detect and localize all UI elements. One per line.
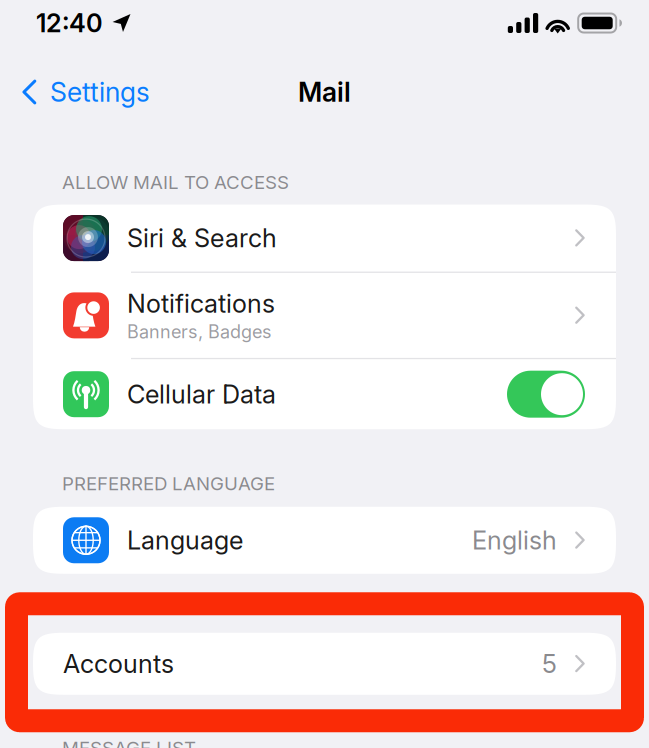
button[interactable]: Notifications: [33, 273, 616, 358]
staticText: Mail: [298, 76, 351, 108]
staticText: Notifications: [127, 288, 275, 319]
staticText: Banners, Badges: [127, 321, 272, 343]
staticText: Settings: [50, 76, 150, 108]
staticText: 12:40: [36, 8, 103, 38]
button[interactable]: Cellular Data: [33, 359, 616, 429]
staticText: MESSAGE LIST: [62, 737, 196, 748]
staticText: Language: [127, 525, 243, 556]
staticText: Cellular Data: [127, 379, 276, 410]
button[interactable]: Settings: [0, 68, 162, 116]
staticText: Accounts: [63, 648, 174, 679]
button[interactable]: Language: [33, 507, 616, 574]
staticText: 5: [542, 648, 557, 679]
staticText: English: [472, 525, 557, 556]
button[interactable]: Accounts: [0, 633, 649, 695]
staticText: ALLOW MAIL TO ACCESS: [62, 171, 289, 194]
button[interactable]: Siri & Search: [33, 205, 616, 272]
staticText: Siri & Search: [127, 223, 277, 253]
staticText: PREFERRED LANGUAGE: [62, 472, 275, 495]
